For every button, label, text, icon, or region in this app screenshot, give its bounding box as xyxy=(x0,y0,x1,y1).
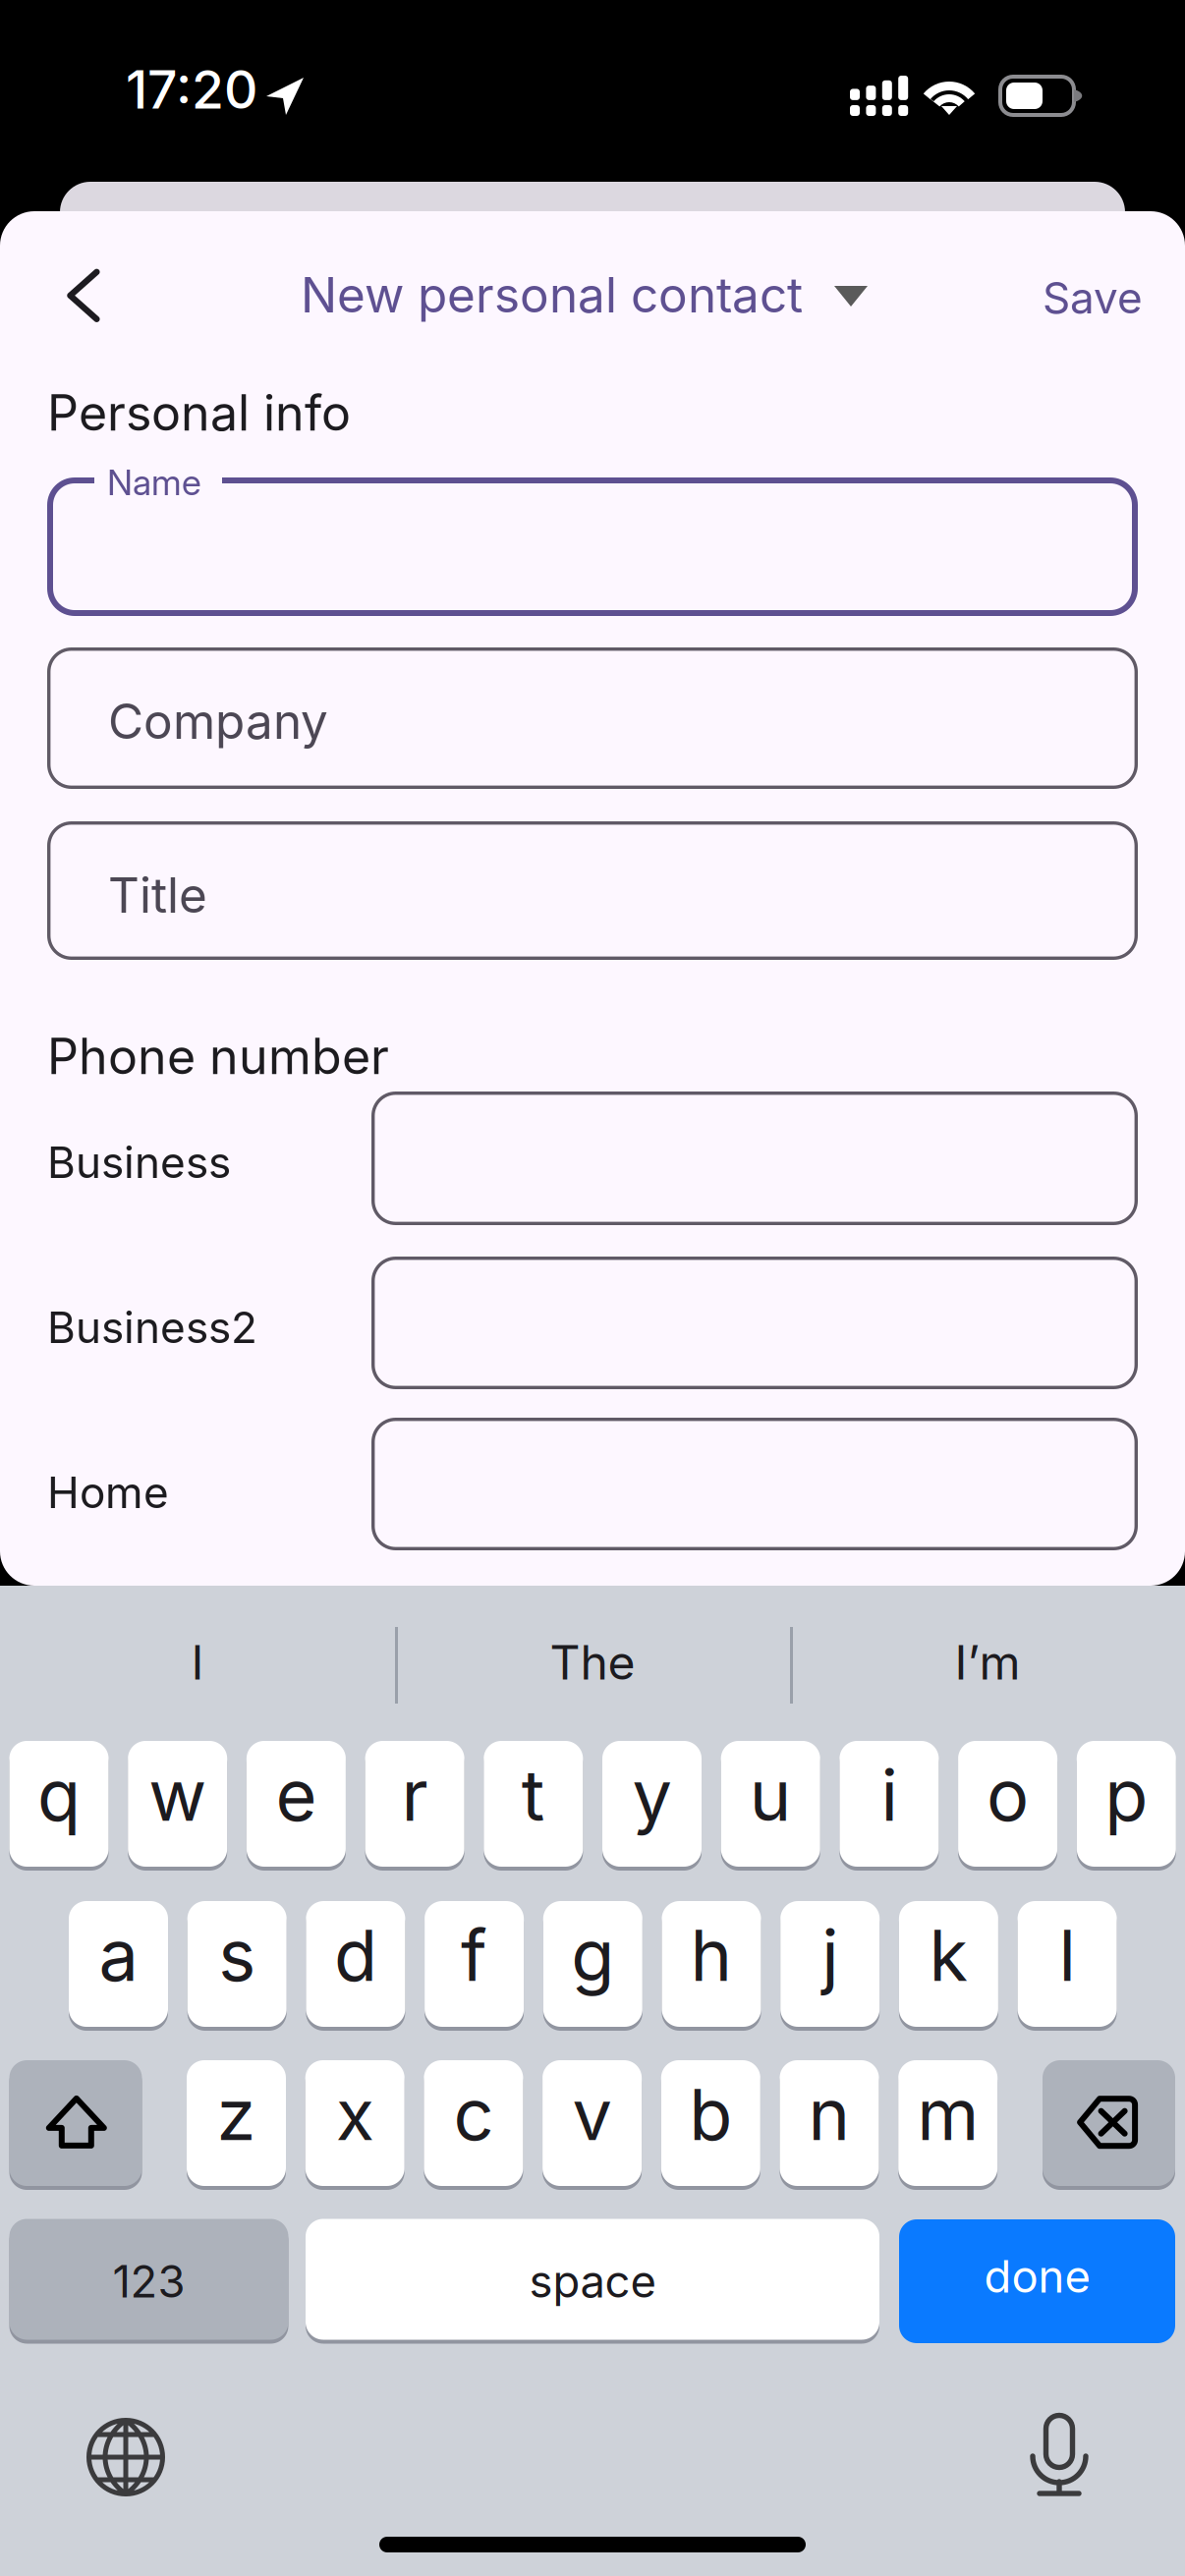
staticText: q xyxy=(37,1752,81,1838)
button[interactable]: w xyxy=(128,1741,227,1871)
button[interactable]: m xyxy=(898,2060,998,2190)
staticText: x xyxy=(336,2071,374,2157)
button[interactable]: f xyxy=(425,1901,524,2031)
button[interactable]: I’m xyxy=(790,1586,1185,1739)
staticText: space xyxy=(529,2254,656,2308)
staticText: Business2 xyxy=(47,1301,257,1353)
button[interactable]: Save xyxy=(1043,268,1180,327)
staticText: n xyxy=(808,2071,850,2157)
staticText: I’m xyxy=(955,1634,1020,1691)
staticText: Save xyxy=(1043,272,1143,324)
staticText: v xyxy=(572,2071,612,2157)
button[interactable]: c xyxy=(424,2060,523,2190)
staticText: r xyxy=(401,1752,428,1838)
button[interactable]: v xyxy=(542,2060,642,2190)
button[interactable]: b xyxy=(661,2060,760,2190)
staticText: s xyxy=(218,1912,256,1998)
button[interactable]: y xyxy=(602,1741,702,1871)
staticText: b xyxy=(689,2071,732,2157)
staticText: y xyxy=(632,1752,672,1838)
button[interactable]: x xyxy=(305,2060,405,2190)
staticText: 123 xyxy=(113,2254,185,2308)
staticText: w xyxy=(149,1752,207,1838)
button[interactable]: s xyxy=(187,1901,287,2031)
button[interactable]: n xyxy=(780,2060,879,2190)
staticText: p xyxy=(1105,1752,1148,1838)
button[interactable]: The xyxy=(395,1586,790,1739)
button[interactable]: u xyxy=(721,1741,820,1871)
button[interactable]: l xyxy=(1018,1901,1117,2031)
button[interactable]: 123 xyxy=(9,2219,288,2344)
button[interactable]: g xyxy=(543,1901,642,2031)
staticText: u xyxy=(749,1752,792,1838)
button[interactable]: j xyxy=(780,1901,880,2031)
button[interactable] xyxy=(371,1418,1138,1550)
button[interactable]: space xyxy=(306,2219,879,2344)
staticText: Phone number xyxy=(47,1026,389,1086)
button[interactable]: h xyxy=(662,1901,761,2031)
staticText: j xyxy=(822,1912,838,1998)
button[interactable]: q xyxy=(9,1741,109,1871)
button[interactable]: i xyxy=(840,1741,939,1871)
button[interactable]: r xyxy=(365,1741,464,1871)
staticText: g xyxy=(571,1912,614,1998)
staticText: i xyxy=(881,1752,897,1838)
button[interactable]: e xyxy=(247,1741,346,1871)
button[interactable]: z xyxy=(187,2060,286,2190)
button[interactable] xyxy=(47,821,1138,960)
staticText: m xyxy=(917,2071,979,2157)
button[interactable] xyxy=(47,647,1138,789)
staticText: e xyxy=(276,1752,317,1838)
staticText: o xyxy=(987,1752,1029,1838)
staticText: done xyxy=(984,2249,1090,2303)
staticText: New personal contact xyxy=(301,265,803,324)
button[interactable] xyxy=(371,1092,1138,1225)
button[interactable]: Shift xyxy=(9,2060,142,2190)
button[interactable]: New personal contact xyxy=(301,263,871,326)
staticText: k xyxy=(929,1912,968,1998)
staticText: a xyxy=(99,1912,138,1998)
button[interactable]: done xyxy=(899,2219,1175,2343)
staticText: t xyxy=(522,1752,545,1838)
button[interactable]: Next keyboard xyxy=(86,2418,165,2496)
button[interactable]: Delete xyxy=(1043,2060,1175,2190)
button[interactable]: o xyxy=(958,1741,1057,1871)
staticText: Home xyxy=(47,1466,169,1518)
staticText: l xyxy=(1059,1912,1076,1998)
button[interactable]: p xyxy=(1077,1741,1176,1871)
staticText: f xyxy=(461,1912,487,1998)
button[interactable]: I xyxy=(0,1586,395,1739)
button[interactable] xyxy=(47,477,1138,616)
staticText: z xyxy=(217,2071,256,2157)
button[interactable]: d xyxy=(306,1901,405,2031)
button[interactable]: a xyxy=(69,1901,168,2031)
staticText: Name xyxy=(107,461,201,504)
button[interactable]: t xyxy=(484,1741,583,1871)
button[interactable]: k xyxy=(899,1901,998,2031)
button[interactable] xyxy=(371,1257,1138,1389)
staticText: h xyxy=(690,1912,733,1998)
staticText: d xyxy=(334,1912,377,1998)
button[interactable]: Dictate xyxy=(1032,2413,1087,2495)
staticText: 17:20 xyxy=(126,58,257,121)
staticText: Business xyxy=(47,1136,231,1188)
staticText: c xyxy=(453,2071,494,2157)
staticText: The xyxy=(550,1634,635,1691)
staticText: I xyxy=(191,1634,204,1691)
button[interactable]: Back xyxy=(22,239,143,361)
staticText: Company xyxy=(108,692,328,750)
staticText: Title xyxy=(108,866,207,924)
staticText: Personal info xyxy=(47,383,351,442)
